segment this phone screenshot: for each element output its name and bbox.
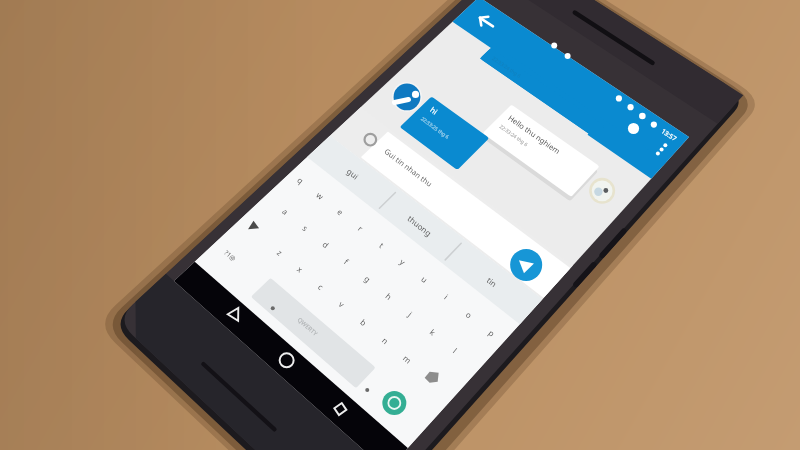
button[interactable]: Chat screen shown on a phone [0,0,800,450]
